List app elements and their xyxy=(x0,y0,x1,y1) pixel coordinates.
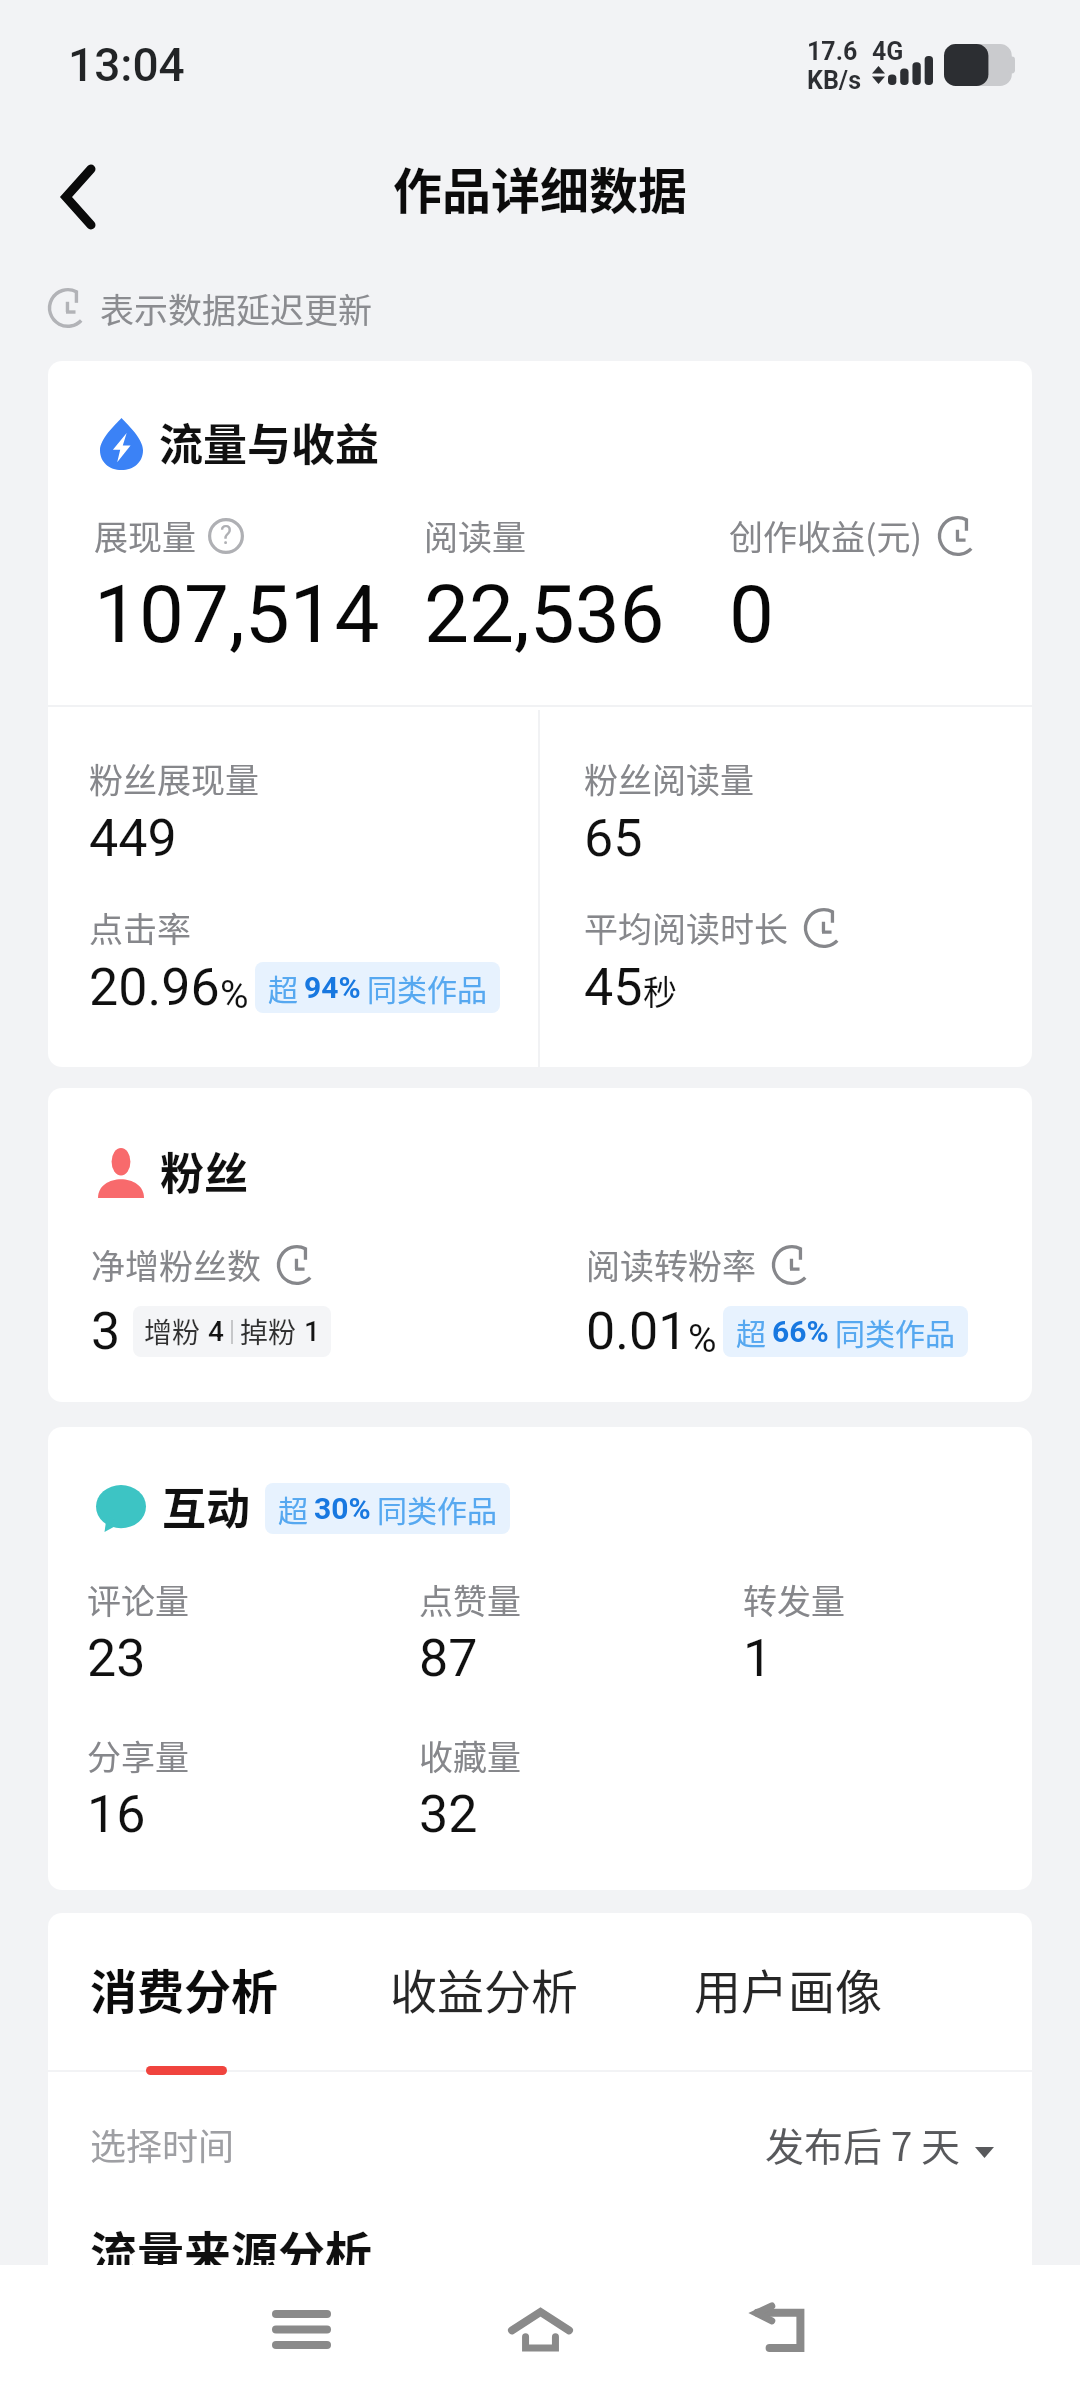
staticText: 66% xyxy=(772,1314,829,1349)
staticText: 用户画像 xyxy=(694,1954,882,2022)
staticText: 表示数据延迟更新 xyxy=(100,284,372,333)
staticText: 点赞量 xyxy=(419,1575,521,1624)
staticText: 同类作品 xyxy=(377,1487,497,1530)
staticText: 同类作品 xyxy=(835,1310,955,1353)
staticText: % xyxy=(220,972,249,1018)
staticText: 增粉 xyxy=(144,1311,201,1352)
staticText: 点击率 xyxy=(89,903,191,952)
staticText: 流量来源分析 xyxy=(90,2216,372,2265)
staticText: 87 xyxy=(419,1628,478,1689)
button[interactable]: 发布后 7 天 xyxy=(765,2102,994,2186)
staticText: 0.01 xyxy=(586,1301,688,1362)
staticText: 1 xyxy=(304,1315,320,1348)
staticText: 消费分析 xyxy=(90,1954,278,2022)
staticText: 粉丝阅读量 xyxy=(584,754,754,803)
button[interactable]: Home xyxy=(480,2279,600,2379)
staticText: 30% xyxy=(314,1491,371,1526)
staticText: 选择时间 xyxy=(90,2118,235,2170)
staticText: 同类作品 xyxy=(367,966,487,1009)
staticText: 45 xyxy=(584,957,643,1018)
staticText: 阅读量 xyxy=(424,511,526,560)
staticText: 4 xyxy=(208,1315,224,1348)
staticText: 超 xyxy=(278,1487,308,1530)
staticText: 449 xyxy=(89,808,177,869)
staticText: 评论量 xyxy=(87,1575,189,1624)
button[interactable]: 收益分析 xyxy=(370,1926,598,2050)
staticText: 分享量 xyxy=(87,1731,189,1780)
staticText: 3 xyxy=(91,1301,121,1362)
staticText: 13:04 xyxy=(68,38,185,92)
staticText: 平均阅读时长 xyxy=(584,903,788,952)
staticText: 65 xyxy=(584,808,643,869)
staticText: 22,536 xyxy=(424,568,665,662)
staticText: 17.6 xyxy=(807,37,858,66)
staticText: 收益分析 xyxy=(390,1954,578,2022)
staticText: 掉粉 xyxy=(240,1311,297,1352)
staticText: 粉丝展现量 xyxy=(89,754,259,803)
staticText: 0 xyxy=(729,568,774,662)
button[interactable]: Back xyxy=(719,2279,839,2379)
staticText: 107,514 xyxy=(94,568,380,662)
staticText: 94% xyxy=(304,970,361,1005)
staticText: 超 xyxy=(268,966,298,1009)
staticText: 互动 xyxy=(162,1474,250,1538)
staticText: 秒 xyxy=(643,966,677,1015)
button[interactable]: Back xyxy=(0,129,130,246)
staticText: 流量与收益 xyxy=(159,410,379,474)
staticText: KB/s xyxy=(807,66,861,95)
staticText: 作品详细数据 xyxy=(393,152,688,223)
staticText: 32 xyxy=(419,1784,478,1845)
staticText: 4G xyxy=(872,37,904,66)
staticText: 净增粉丝数 xyxy=(91,1240,261,1289)
staticText: 转发量 xyxy=(743,1575,845,1624)
button[interactable]: Recent apps xyxy=(241,2279,361,2379)
staticText: 粉丝 xyxy=(160,1139,248,1203)
staticText: 23 xyxy=(87,1628,146,1689)
staticText: 20.96 xyxy=(89,957,220,1018)
button[interactable]: 消费分析 xyxy=(70,1926,298,2050)
staticText: 展现量 xyxy=(94,511,196,560)
staticText: 阅读转粉率 xyxy=(586,1240,756,1289)
button[interactable]: 用户画像 xyxy=(674,1926,902,2050)
staticText: % xyxy=(688,1316,717,1362)
staticText: 1 xyxy=(743,1628,773,1689)
staticText: 创作收益(元) xyxy=(729,511,922,560)
staticText: ? xyxy=(220,521,232,550)
staticText: 收藏量 xyxy=(419,1731,521,1780)
staticText: 超 xyxy=(736,1310,766,1353)
staticText: 16 xyxy=(87,1784,146,1845)
staticText: 发布后 7 天 xyxy=(765,2116,961,2172)
